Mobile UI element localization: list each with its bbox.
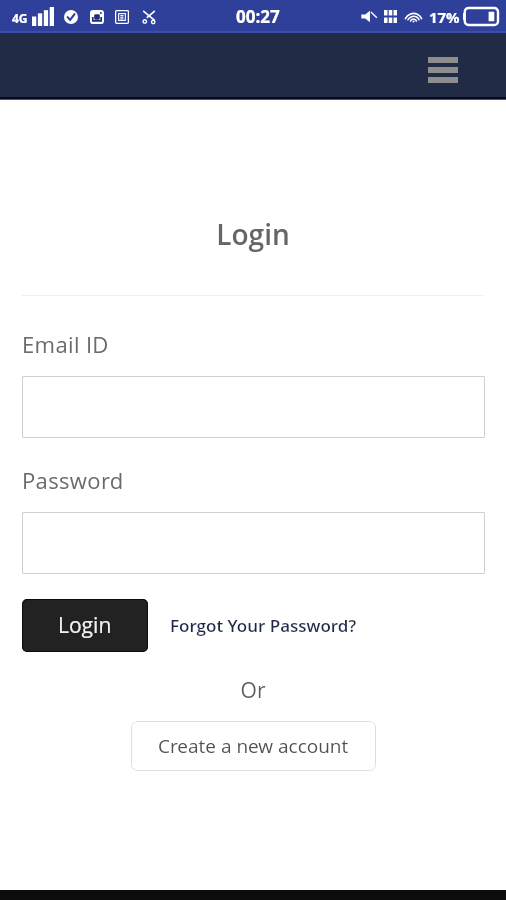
staticText: Create a new account	[158, 733, 349, 759]
staticText: Or	[0, 676, 506, 705]
staticText: Email ID	[22, 329, 109, 359]
button[interactable]: Forgot Your Password?	[170, 614, 357, 637]
button[interactable]	[22, 376, 485, 438]
staticText: Login	[58, 611, 112, 640]
button[interactable]: Open navigation menu	[419, 46, 467, 94]
staticText: Password	[22, 465, 124, 495]
button[interactable]: Create a new account	[131, 721, 376, 771]
button[interactable]	[22, 512, 485, 574]
staticText: Login	[0, 215, 506, 253]
staticText: 00:27	[236, 5, 280, 28]
staticText: 4G	[12, 10, 28, 26]
button[interactable]: Login	[22, 599, 148, 652]
staticText: 17%	[429, 7, 460, 27]
